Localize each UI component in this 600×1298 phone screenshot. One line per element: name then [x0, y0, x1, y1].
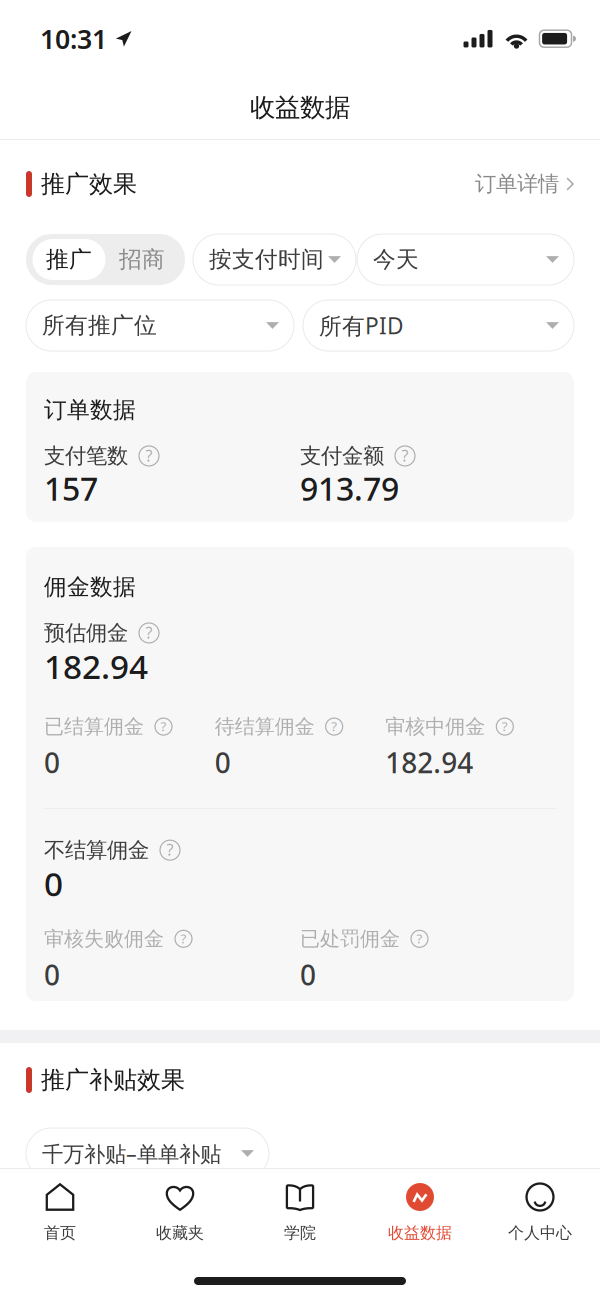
button[interactable]: 首页 [0, 1183, 120, 1243]
button[interactable]: 按支付时间 [193, 234, 356, 285]
staticText: ? [502, 717, 508, 735]
staticText: 千万补贴–单单补贴 [42, 1139, 221, 1168]
button[interactable]: 今天 [357, 234, 574, 285]
staticText: 推广效果 [41, 169, 137, 199]
button[interactable]: 所有推广位 [26, 300, 294, 351]
staticText: 0 [44, 956, 60, 993]
staticText: 首页 [44, 1223, 76, 1243]
staticText: 个人中心 [508, 1223, 572, 1243]
staticText: 招商 [119, 246, 165, 273]
button[interactable]: 个人中心 [480, 1183, 600, 1243]
staticText: 学院 [284, 1223, 316, 1243]
staticText: 0 [44, 744, 60, 781]
staticText: 待结算佣金 [215, 714, 315, 739]
staticText: 审核中佣金 [385, 714, 485, 739]
staticText: 不结算佣金 [44, 837, 149, 863]
staticText: ? [145, 622, 152, 643]
button[interactable]: 所有PID [303, 300, 574, 351]
button[interactable]: 订单详情 [475, 171, 574, 197]
staticText: ? [166, 839, 173, 860]
staticText: 已处罚佣金 [300, 926, 400, 951]
button[interactable]: 推广 [32, 239, 105, 280]
staticText: 所有PID [319, 310, 404, 340]
staticText: 审核失败佣金 [44, 926, 164, 951]
staticText: 预估佣金 [44, 620, 128, 646]
staticText: 佣金数据 [44, 573, 136, 601]
staticText: 182.94 [385, 744, 473, 781]
staticText: ? [145, 445, 152, 466]
staticText: 已结算佣金 [44, 714, 144, 739]
staticText: ? [331, 717, 337, 735]
staticText: ? [180, 929, 186, 947]
staticText: ? [401, 445, 408, 466]
button[interactable]: 千万补贴–单单补贴 [26, 1128, 269, 1179]
staticText: 收益数据 [388, 1223, 452, 1243]
staticText: 支付笔数 [44, 443, 128, 469]
staticText: ? [160, 717, 166, 735]
staticText: 支付金额 [300, 443, 384, 469]
staticText: 157 [44, 467, 98, 509]
staticText: 收藏夹 [156, 1223, 204, 1243]
staticText: 0 [44, 861, 63, 906]
staticText: 所有推广位 [42, 312, 157, 339]
staticText: 收益数据 [250, 92, 350, 123]
staticText: 913.79 [300, 467, 399, 509]
button[interactable]: 招商 [105, 239, 178, 280]
staticText: 182.94 [44, 644, 148, 688]
staticText: 推广补贴效果 [41, 1065, 185, 1095]
staticText: 0 [300, 956, 316, 993]
staticText: ? [416, 929, 422, 947]
button[interactable]: 学院 [240, 1183, 360, 1243]
staticText: 0 [215, 744, 231, 781]
staticText: 按支付时间 [209, 246, 324, 273]
staticText: 今天 [373, 246, 419, 273]
staticText: 推广 [46, 246, 92, 273]
button[interactable]: 收益数据 [360, 1183, 480, 1243]
button[interactable]: 收藏夹 [120, 1183, 240, 1243]
staticText: 10:31 [40, 21, 107, 56]
staticText: 订单详情 [475, 171, 559, 197]
staticText: 订单数据 [44, 396, 136, 424]
